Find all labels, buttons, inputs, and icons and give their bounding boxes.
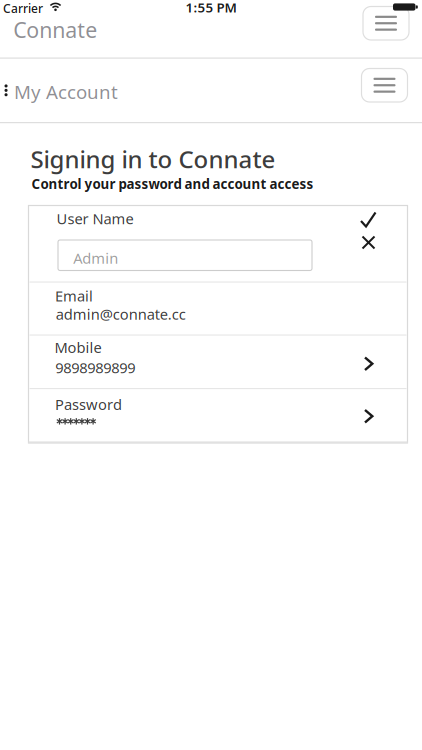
staticText: 9898989899 [55,358,135,377]
staticText: Admin [73,248,118,268]
staticText: Password [55,394,122,414]
button[interactable]: Menu [361,68,407,102]
staticText: Signing in to Connate [30,143,275,175]
staticText: Email [55,286,93,306]
button[interactable]: Password [28,389,422,750]
staticText: admin@connate.cc [56,304,186,324]
staticText: Carrier [3,0,43,16]
staticText: Control your password and account access [31,175,313,193]
staticText: Connate [13,15,97,44]
staticText: 1:55 PM [185,0,236,16]
button[interactable]: User Name [28,205,422,750]
button[interactable]: Menu [363,6,409,40]
button[interactable]: Mobile [28,335,422,750]
button[interactable]: Email [28,282,405,334]
staticText: My Account [14,79,118,104]
staticText: User Name [56,209,133,228]
staticText: Mobile [54,337,101,357]
